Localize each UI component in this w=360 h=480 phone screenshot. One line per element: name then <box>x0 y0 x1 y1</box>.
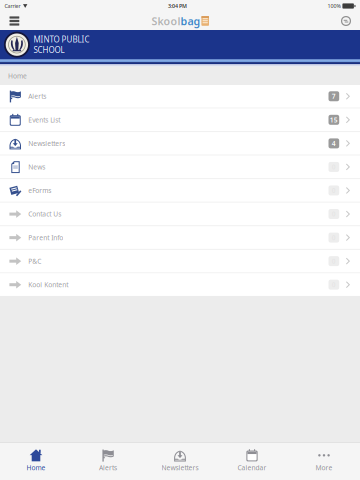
button[interactable]: Alerts <box>0 85 360 108</box>
staticText: P&C <box>28 257 41 266</box>
button[interactable]: More <box>288 443 360 480</box>
button[interactable]: Newsletters <box>144 443 216 480</box>
staticText: Home <box>8 72 27 80</box>
staticText: Alerts <box>28 92 46 101</box>
staticText: Skool <box>151 14 180 28</box>
button[interactable]: Home <box>0 443 72 480</box>
staticText: More <box>315 463 332 472</box>
button[interactable]: Parent Info <box>0 226 360 249</box>
button[interactable]: Alerts <box>72 443 144 480</box>
button[interactable]: Menu <box>2 12 26 30</box>
button[interactable]: Calendar <box>216 443 288 480</box>
staticText: MINTO PUBLIC <box>33 34 89 45</box>
button[interactable]: Contact Us <box>0 203 360 225</box>
button[interactable]: Refresh <box>334 12 358 30</box>
button[interactable]: P&C <box>0 250 360 272</box>
staticText: Alerts <box>99 463 117 472</box>
staticText: bag <box>180 14 200 28</box>
button[interactable]: News <box>0 156 360 178</box>
staticText: 3:04 PM <box>168 2 187 10</box>
staticText: Carrier <box>4 2 20 10</box>
staticText: Events List <box>28 115 60 124</box>
staticText: News <box>28 162 45 171</box>
staticText: SCHOOL <box>33 45 64 55</box>
button[interactable]: Kool Kontent <box>0 273 360 296</box>
staticText: 15 <box>330 115 338 124</box>
staticText: Calendar <box>237 463 266 472</box>
staticText: Newsletters <box>161 463 198 472</box>
staticText: Contact Us <box>28 210 61 218</box>
button[interactable]: Events List <box>0 108 360 131</box>
staticText: 100% <box>327 2 340 10</box>
staticText: 4 <box>332 139 336 148</box>
staticText: Parent Info <box>28 233 63 242</box>
staticText: Home <box>26 463 45 472</box>
button[interactable]: Newsletters <box>0 132 360 155</box>
staticText: eForms <box>28 186 51 195</box>
button[interactable]: eForms <box>0 179 360 202</box>
staticText: 7 <box>332 92 336 101</box>
staticText: Kool Kontent <box>28 280 68 289</box>
staticText: Newsletters <box>28 139 65 148</box>
